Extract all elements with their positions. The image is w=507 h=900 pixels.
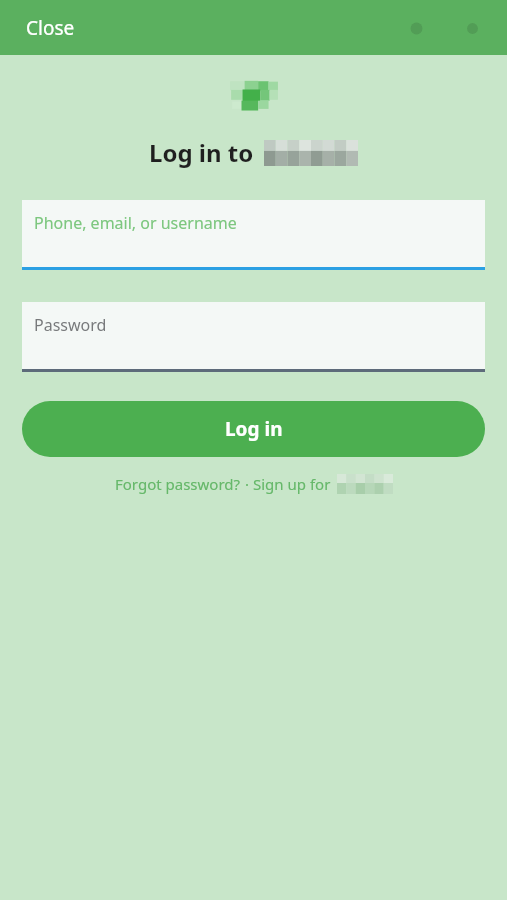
button[interactable]: Phone, email, or username bbox=[22, 200, 485, 270]
button[interactable]: Log in bbox=[22, 401, 485, 457]
staticText: Log in bbox=[225, 416, 283, 442]
staticText: Log in to bbox=[149, 136, 254, 169]
button[interactable]: Forgot password? bbox=[115, 474, 241, 494]
button[interactable]: Help bbox=[455, 11, 489, 45]
staticText: Forgot password? bbox=[115, 474, 241, 494]
button[interactable]: Sign up for bbox=[253, 474, 393, 494]
staticText: · bbox=[241, 474, 253, 494]
button[interactable]: Close bbox=[0, 5, 93, 51]
staticText: Sign up for bbox=[253, 474, 331, 494]
staticText: Password bbox=[34, 314, 107, 336]
button[interactable]: Password bbox=[22, 302, 485, 372]
button[interactable]: Settings bbox=[399, 11, 433, 45]
staticText: Close bbox=[26, 15, 75, 41]
staticText: Phone, email, or username bbox=[34, 212, 237, 234]
